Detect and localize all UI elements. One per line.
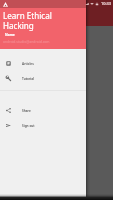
staticText: Learn Ethical Hacking	[3, 10, 52, 31]
button[interactable]: Share	[0, 103, 86, 118]
staticText: Share	[22, 109, 31, 113]
staticText: Sign out	[22, 124, 35, 128]
staticText: 10:33	[101, 1, 111, 6]
button[interactable]: Sign out	[0, 118, 86, 133]
button[interactable]: Articles	[0, 56, 86, 71]
staticText: Name	[5, 32, 15, 36]
staticText: Articles	[22, 62, 34, 66]
staticText: android.studio@android.com	[3, 39, 50, 44]
button[interactable]: Tutorial	[0, 71, 86, 86]
staticText: Tutorial	[22, 77, 35, 81]
